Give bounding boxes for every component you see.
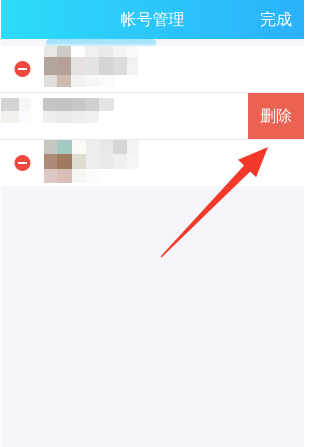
button[interactable]: Remove account: [1, 140, 44, 186]
staticText: 帐号管理: [120, 10, 184, 29]
button[interactable]: Remove account: [1, 46, 44, 92]
button[interactable]: 完成: [248, 0, 304, 39]
button[interactable]: 删除: [248, 93, 304, 139]
staticText: 完成: [260, 10, 292, 29]
staticText: 删除: [260, 106, 292, 126]
button[interactable]: [1, 46, 304, 92]
button[interactable]: [1, 140, 304, 186]
